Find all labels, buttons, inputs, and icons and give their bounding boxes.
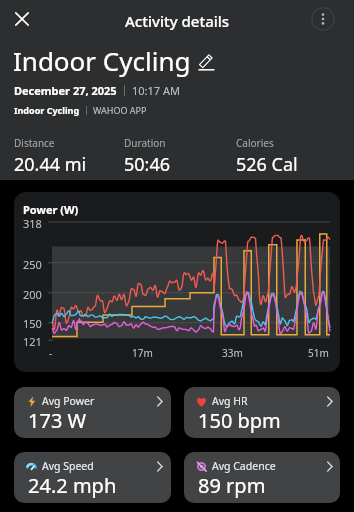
staticText: 150 bpm bbox=[198, 407, 281, 434]
staticText: 526 Cal bbox=[236, 152, 298, 177]
other: Open Avg Power details bbox=[155, 397, 164, 406]
staticText: Avg Speed bbox=[42, 459, 94, 473]
other: Open Avg HR details bbox=[325, 397, 334, 406]
staticText: 200 bbox=[23, 287, 42, 300]
button[interactable]: Avg Speed bbox=[14, 452, 171, 503]
staticText: Indoor Cycling bbox=[13, 43, 191, 78]
staticText: 20.44 mi bbox=[14, 152, 87, 177]
button[interactable]: Close bbox=[8, 5, 36, 33]
staticText: 121 bbox=[23, 334, 42, 347]
staticText: 17m bbox=[132, 346, 153, 360]
staticText: 50:46 bbox=[124, 152, 171, 177]
button[interactable]: Avg HR bbox=[184, 387, 340, 438]
staticText: 51m bbox=[308, 346, 329, 360]
staticText: WAHOO APP bbox=[93, 104, 147, 116]
staticText: Power (W) bbox=[23, 202, 79, 217]
other: Open Avg Cadence details bbox=[325, 462, 334, 471]
staticText: 173 W bbox=[28, 407, 87, 434]
staticText: 10:17 AM bbox=[132, 83, 180, 98]
staticText: Distance bbox=[14, 136, 55, 150]
staticText: 318 bbox=[23, 216, 42, 229]
button[interactable]: Edit activity name bbox=[197, 52, 215, 70]
staticText: Avg HR bbox=[212, 394, 248, 408]
staticText: - bbox=[49, 346, 53, 360]
button[interactable]: Avg Cadence bbox=[184, 452, 340, 503]
staticText: December 27, 2025 bbox=[14, 83, 117, 98]
staticText: 150 bbox=[23, 316, 42, 329]
other: Open Avg Speed details bbox=[155, 462, 164, 471]
staticText: 89 rpm bbox=[198, 472, 266, 499]
staticText: Indoor Cycling bbox=[14, 104, 80, 116]
staticText: Activity details bbox=[125, 11, 230, 31]
staticText: 250 bbox=[23, 257, 42, 270]
staticText: Avg Power bbox=[42, 394, 95, 408]
staticText: 33m bbox=[222, 346, 243, 360]
staticText: Avg Cadence bbox=[212, 459, 276, 473]
staticText: 24.2 mph bbox=[28, 472, 117, 499]
button[interactable]: More options bbox=[311, 7, 335, 31]
staticText: Calories bbox=[236, 136, 274, 150]
button[interactable]: Avg Power bbox=[14, 387, 171, 438]
staticText: Duration bbox=[124, 136, 166, 150]
